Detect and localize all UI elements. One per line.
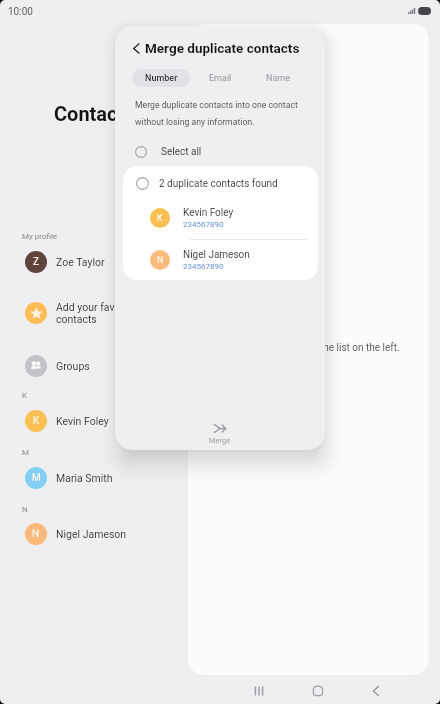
button[interactable]: N <box>0 512 186 556</box>
staticText: Number <box>145 73 178 84</box>
staticText: N <box>32 528 40 540</box>
staticText: K <box>33 415 40 427</box>
staticText: N <box>157 255 164 266</box>
button[interactable]: M <box>0 456 186 500</box>
staticText: K <box>157 213 163 224</box>
button[interactable]: 2 duplicate contacts found <box>123 166 318 201</box>
staticText: N <box>22 505 28 514</box>
staticText: 234567890 <box>183 262 224 271</box>
staticText: 2 duplicate contacts found <box>159 178 278 190</box>
staticText: Nigel Jameson <box>183 249 250 261</box>
staticText: Merge duplicate contacts into one contac… <box>135 100 298 127</box>
staticText: My profile <box>22 232 58 241</box>
staticText: Select a contact from the list on the le… <box>222 342 400 354</box>
button[interactable]: K <box>123 198 318 238</box>
button[interactable]: Add your favourite contacts <box>0 291 186 335</box>
staticText: Contacts <box>54 102 135 125</box>
staticText: M <box>22 448 29 457</box>
staticText: Name <box>266 73 290 84</box>
staticText: Email <box>209 73 232 84</box>
button[interactable]: Email <box>191 69 249 87</box>
staticText: Z <box>33 256 39 268</box>
staticText: 10:00 <box>8 6 33 18</box>
staticText: Maria Smith <box>56 472 113 484</box>
button[interactable]: Merge <box>115 424 325 450</box>
button[interactable]: Z <box>0 240 186 284</box>
button[interactable]: Home <box>301 674 335 704</box>
staticText: Select all <box>161 146 202 158</box>
button[interactable]: Navigate up <box>121 33 151 63</box>
button[interactable]: N <box>123 240 318 280</box>
staticText: Kevin Foley <box>56 415 109 427</box>
staticText: Merge duplicate contacts <box>145 40 300 56</box>
button[interactable]: Number <box>132 69 190 87</box>
staticText: Merge <box>209 436 231 445</box>
staticText: M <box>32 472 41 484</box>
staticText: Nigel Jameson <box>56 528 127 540</box>
button[interactable]: Groups <box>0 344 186 388</box>
staticText: Groups <box>56 360 90 372</box>
button[interactable]: Back <box>359 674 393 704</box>
button[interactable]: Name <box>249 69 307 87</box>
staticText: 234567890 <box>183 220 224 229</box>
staticText: Zoe Taylor <box>56 256 105 268</box>
button[interactable]: Select all <box>115 138 325 166</box>
button[interactable]: Recent apps <box>242 674 276 704</box>
staticText: K <box>22 391 28 400</box>
staticText: Kevin Foley <box>183 207 234 219</box>
button[interactable]: K <box>0 399 186 443</box>
staticText: Add your favourite contacts <box>56 301 142 326</box>
